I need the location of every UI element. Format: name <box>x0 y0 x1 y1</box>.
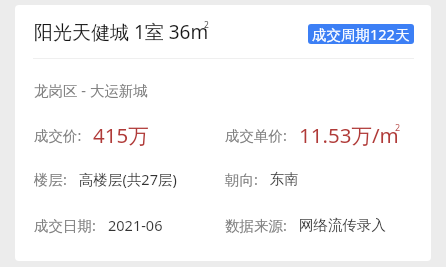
button[interactable]: 成交日期: <box>34 210 163 240</box>
button[interactable]: 成交周期122天 <box>308 24 414 44</box>
staticText: 415万 <box>93 121 149 149</box>
staticText: 2021-06 <box>108 215 163 235</box>
button[interactable]: 成交价: <box>34 120 149 150</box>
staticText: 龙岗区 - 大运新城 <box>34 80 148 100</box>
staticText: 成交单价: <box>225 125 299 145</box>
button[interactable] <box>15 5 431 261</box>
staticText: 成交日期: <box>34 215 108 235</box>
staticText: 楼层: <box>34 169 79 189</box>
button[interactable]: 龙岗区 - 大运新城 <box>34 75 148 105</box>
staticText: 阳光天健城 1室 36m <box>34 19 209 45</box>
staticText: 高楼层(共27层) <box>79 169 177 189</box>
staticText: 2 <box>204 19 209 31</box>
staticText: 网络流传录入 <box>299 216 386 234</box>
button[interactable]: 成交单价: <box>225 120 399 150</box>
button[interactable]: 楼层: <box>34 164 177 194</box>
staticText: 成交周期122天 <box>312 24 410 44</box>
staticText: 成交价: <box>34 125 93 145</box>
button[interactable]: 数据来源: <box>225 210 386 240</box>
staticText: 2 <box>395 121 401 133</box>
staticText: 11.53万/m <box>299 121 399 149</box>
button[interactable]: 朝向: <box>225 164 299 194</box>
staticText: 数据来源: <box>225 215 299 235</box>
staticText: 朝向: <box>225 169 270 189</box>
staticText: 东南 <box>270 170 299 188</box>
button[interactable]: 阳光天健城 1室 36m <box>34 17 209 47</box>
